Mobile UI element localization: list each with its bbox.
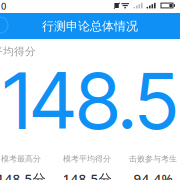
staticText: 0 — [1, 0, 6, 12]
button[interactable]: 模考平均得分 — [54, 154, 120, 180]
staticText: 平均得分 — [0, 45, 36, 58]
staticText: 94.4% — [133, 170, 172, 180]
staticText: 模考平均得分 — [63, 154, 111, 164]
button[interactable]: 模考最高分 — [0, 154, 54, 180]
staticText: 行测申论总体情况 — [42, 19, 138, 34]
staticText: 148.5分 — [0, 170, 45, 180]
button[interactable]: Back — [0, 17, 8, 33]
staticText: 击败参与考生 — [129, 154, 177, 164]
staticText: 148.5分 — [62, 170, 111, 180]
button[interactable]: 击败参与考生 — [120, 154, 180, 180]
staticText: 模考最高分 — [1, 154, 41, 164]
staticText: 148.5 — [3, 54, 178, 148]
